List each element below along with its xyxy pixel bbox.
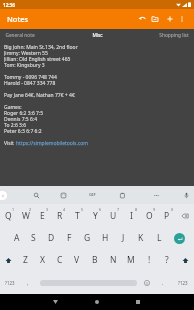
staticText: Jillian: Old English street 465 bbox=[4, 56, 71, 62]
button[interactable]: Home bbox=[83, 294, 111, 310]
button[interactable]: Clipboard bbox=[107, 186, 137, 204]
staticText: 8 bbox=[135, 207, 138, 212]
staticText: GIF bbox=[89, 192, 96, 198]
staticText: D bbox=[48, 232, 55, 244]
button[interactable]: X bbox=[34, 249, 51, 271]
staticText: K bbox=[138, 232, 144, 244]
button[interactable]: Back bbox=[41, 294, 69, 310]
staticText: C bbox=[57, 254, 63, 266]
button[interactable]: Search bbox=[21, 186, 51, 204]
staticText: H bbox=[102, 232, 109, 244]
button[interactable]: More bbox=[141, 186, 171, 204]
staticText: Y bbox=[93, 210, 98, 222]
staticText: . bbox=[162, 279, 164, 286]
button[interactable]: N bbox=[104, 249, 122, 271]
button[interactable]: Misc bbox=[77, 29, 117, 42]
staticText: Pay Jane 64€, Nathan 77€ + 4€ bbox=[4, 92, 75, 98]
button[interactable]: J bbox=[114, 227, 132, 249]
button[interactable]: ?123 bbox=[0, 271, 20, 294]
staticText: L bbox=[157, 232, 162, 244]
staticText: Harold - 0847 334 778 bbox=[4, 80, 56, 86]
staticText: 6 bbox=[99, 207, 102, 212]
staticText: Tommy - 0096 748 744 bbox=[4, 74, 57, 80]
staticText: 2 bbox=[29, 207, 32, 212]
staticText: 5 bbox=[81, 207, 84, 212]
button[interactable]: Emoji bbox=[139, 271, 155, 294]
button[interactable]: K bbox=[132, 227, 150, 249]
button[interactable]: V bbox=[68, 249, 86, 271]
staticText: Dennis 7:5 6:4 bbox=[4, 116, 38, 122]
staticText: T bbox=[75, 210, 80, 222]
staticText: R bbox=[57, 210, 63, 222]
staticText: 1 bbox=[12, 207, 15, 212]
button[interactable]: Q bbox=[0, 204, 17, 227]
button[interactable]: ? bbox=[158, 249, 176, 271]
button[interactable]: More options bbox=[175, 9, 189, 29]
button[interactable]: Shift bbox=[0, 249, 17, 271]
button[interactable]: Backspace bbox=[176, 204, 194, 227]
button[interactable]: Y bbox=[86, 204, 104, 227]
button[interactable]: P bbox=[158, 204, 176, 227]
staticText: Z bbox=[23, 254, 28, 266]
staticText: Shopping list bbox=[159, 32, 189, 39]
staticText: Jimmy: Western 55 bbox=[4, 50, 48, 56]
button[interactable]: G bbox=[78, 227, 96, 249]
button[interactable]: B bbox=[86, 249, 104, 271]
button[interactable]: Save note bbox=[148, 9, 162, 29]
button[interactable]: Space bbox=[36, 271, 141, 294]
staticText: 7 bbox=[117, 207, 120, 212]
button[interactable]: S bbox=[25, 227, 42, 249]
staticText: M bbox=[127, 254, 135, 266]
staticText: G bbox=[84, 232, 91, 244]
staticText: Notes bbox=[7, 14, 29, 24]
staticText: O bbox=[146, 210, 153, 222]
staticText: E bbox=[40, 210, 45, 222]
staticText: 12:36 bbox=[3, 2, 15, 8]
button[interactable]: Recents bbox=[124, 294, 152, 310]
button[interactable]: Voice input bbox=[171, 186, 194, 204]
button[interactable]: , bbox=[20, 271, 36, 294]
button[interactable]: D bbox=[42, 227, 60, 249]
button[interactable]: Back bbox=[0, 191, 7, 200]
button[interactable]: T bbox=[68, 204, 86, 227]
staticText: ?123 bbox=[5, 280, 15, 286]
button[interactable]: R bbox=[51, 204, 68, 227]
button[interactable]: A bbox=[8, 227, 25, 249]
button[interactable]: Shift bbox=[176, 249, 194, 271]
button[interactable]: L bbox=[150, 227, 168, 249]
staticText: I bbox=[130, 210, 133, 222]
staticText: Tom: Kingsbury 3 bbox=[4, 62, 45, 68]
button[interactable]: ! bbox=[140, 249, 158, 271]
button[interactable]: Z bbox=[17, 249, 34, 271]
button[interactable]: W bbox=[17, 204, 34, 227]
staticText: B bbox=[92, 254, 98, 266]
staticText: Visit bbox=[4, 140, 16, 146]
staticText: ! bbox=[148, 254, 151, 266]
button[interactable]: O bbox=[140, 204, 158, 227]
button[interactable]: U bbox=[104, 204, 122, 227]
button[interactable]: https://simplemobiletools.com bbox=[16, 140, 88, 146]
button[interactable]: Stickers bbox=[48, 186, 78, 204]
staticText: To 2:6 3:6 bbox=[4, 122, 27, 128]
button[interactable]: Undo bbox=[135, 9, 149, 29]
button[interactable]: GIF bbox=[77, 186, 107, 204]
button[interactable]: C bbox=[51, 249, 68, 271]
staticText: Roger 6:2 3:6 7:5 bbox=[4, 110, 44, 116]
button[interactable]: New note bbox=[163, 9, 177, 29]
staticText: General note bbox=[5, 32, 35, 39]
button[interactable]: E bbox=[34, 204, 51, 227]
button[interactable]: M bbox=[122, 249, 140, 271]
button[interactable]: F bbox=[60, 227, 78, 249]
button[interactable]: General note bbox=[0, 29, 40, 42]
staticText: F bbox=[67, 232, 72, 244]
button[interactable]: Shopping list bbox=[154, 29, 194, 42]
button[interactable]: I bbox=[122, 204, 140, 227]
button[interactable]: ?123 bbox=[171, 271, 194, 294]
staticText: S bbox=[31, 232, 36, 244]
button[interactable]: Enter bbox=[168, 227, 190, 249]
staticText: 0 bbox=[171, 207, 174, 212]
button[interactable]: H bbox=[96, 227, 114, 249]
staticText: 4 bbox=[63, 207, 66, 212]
staticText: ? bbox=[165, 254, 169, 266]
